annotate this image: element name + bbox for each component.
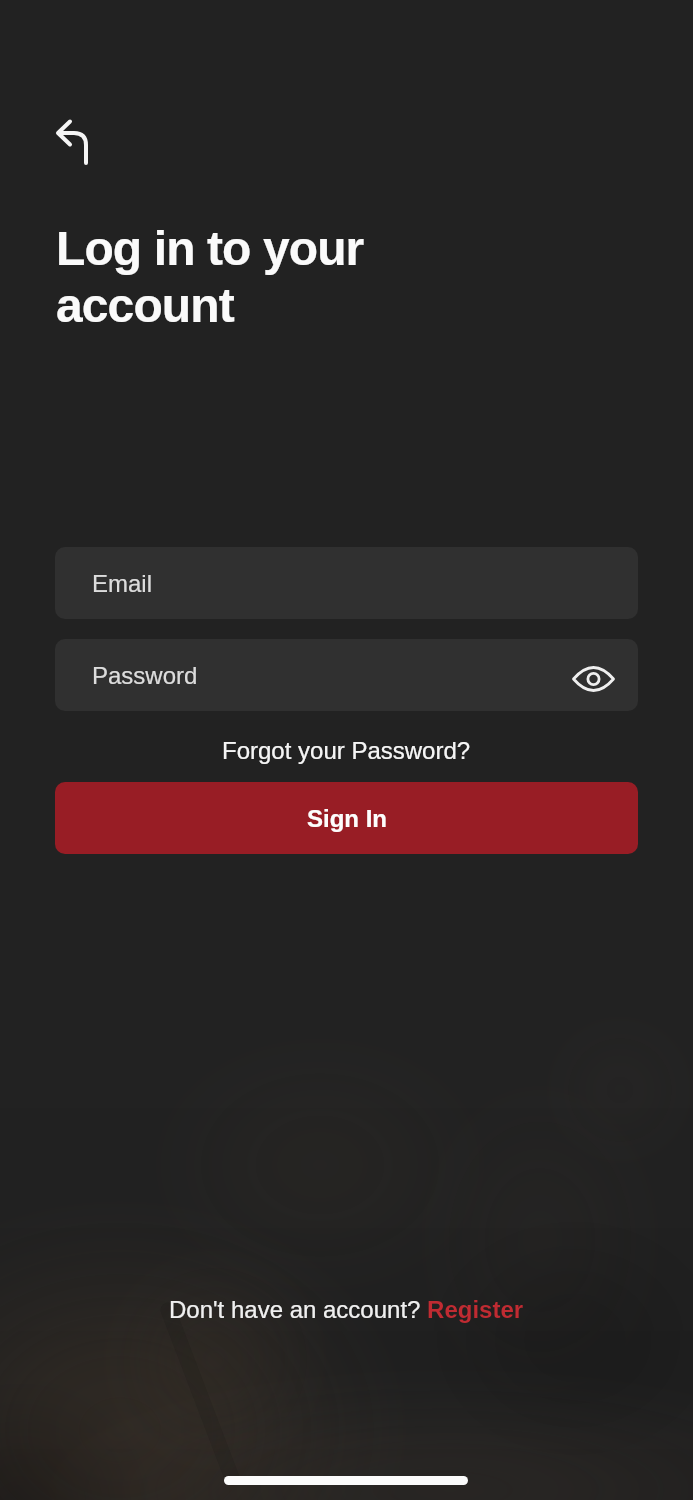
staticText: Password: [92, 662, 198, 689]
button[interactable]: Forgot your Password?: [222, 737, 471, 764]
staticText: Email: [92, 570, 153, 597]
button[interactable]: [44, 112, 100, 168]
staticText: Log in to your account: [56, 222, 364, 332]
staticText: Sign In: [307, 805, 387, 832]
button[interactable]: Sign In: [55, 782, 638, 854]
button[interactable]: Don't have an account? Register: [169, 1296, 524, 1323]
button[interactable]: [571, 655, 615, 695]
button[interactable]: Password: [55, 639, 638, 711]
button[interactable]: Email: [55, 547, 638, 619]
